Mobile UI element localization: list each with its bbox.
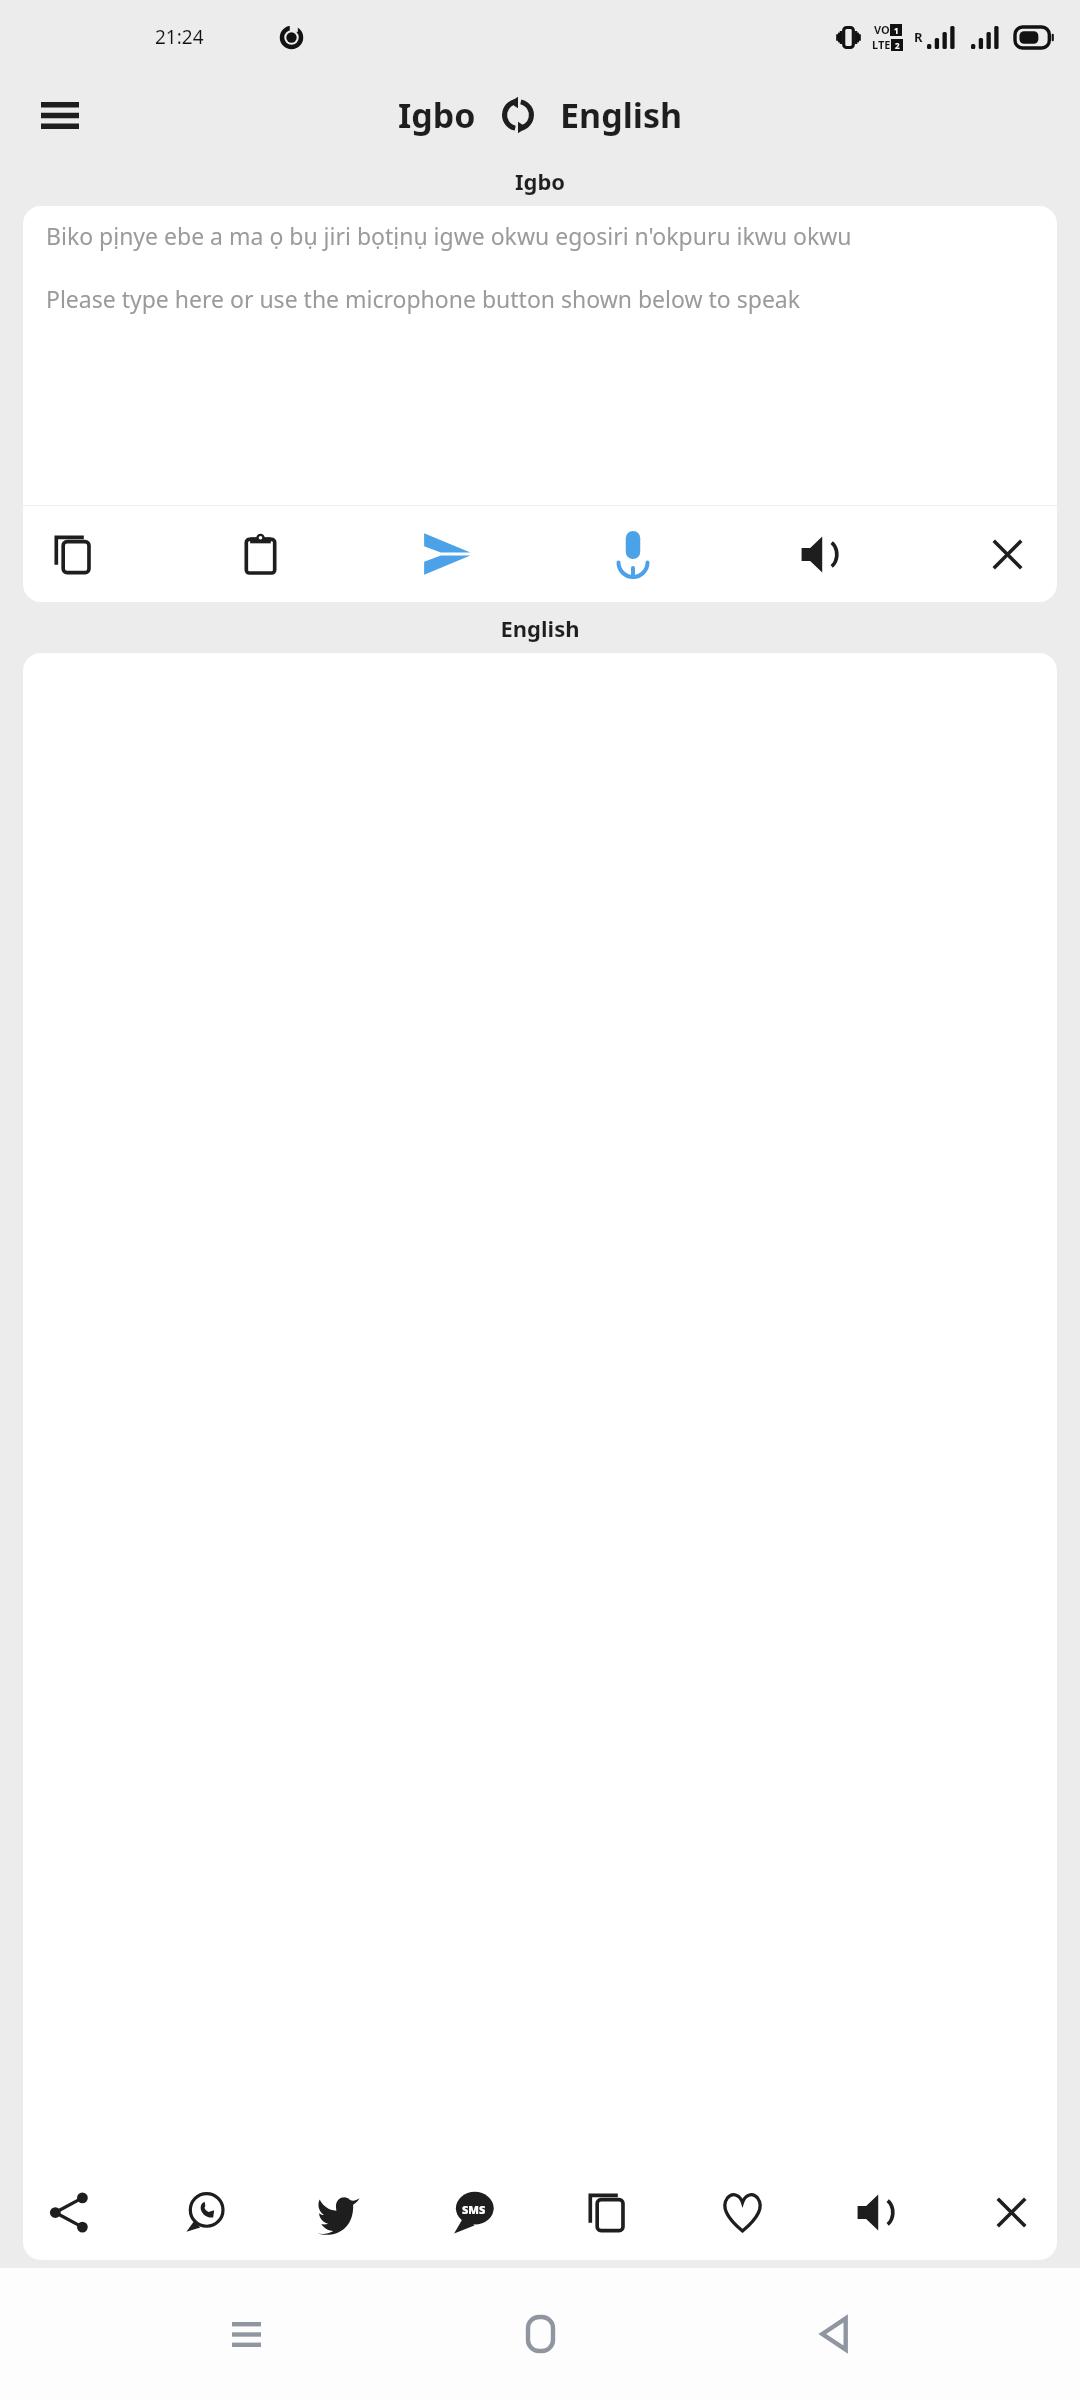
button[interactable]: Recents bbox=[198, 2286, 294, 2382]
staticText: Biko pịnye ebe a ma ọ bụ jiri bọtịnụ igw… bbox=[46, 220, 852, 251]
staticText: 2 bbox=[895, 40, 900, 51]
button[interactable]: Listen bbox=[838, 2174, 914, 2250]
button[interactable]: Share bbox=[31, 2174, 107, 2250]
staticText: 1 bbox=[894, 25, 899, 36]
staticText: Please type here or use the microphone b… bbox=[46, 283, 801, 314]
staticText: LTE bbox=[872, 37, 891, 52]
staticText: English bbox=[0, 613, 1080, 643]
button[interactable]: Clear bbox=[969, 516, 1045, 592]
staticText: English bbox=[560, 92, 683, 138]
button[interactable]: WhatsApp bbox=[166, 2174, 242, 2250]
button[interactable]: Igbo bbox=[398, 92, 476, 138]
button[interactable]: Clear bbox=[973, 2174, 1049, 2250]
button[interactable]: Translate bbox=[409, 516, 485, 592]
button[interactable]: Paste bbox=[222, 516, 298, 592]
staticText: VO bbox=[874, 22, 890, 37]
button[interactable]: Speak bbox=[595, 516, 671, 592]
staticText: SMS bbox=[462, 2202, 486, 2217]
button[interactable]: Copy bbox=[569, 2174, 645, 2250]
staticText: 21:24 bbox=[155, 24, 204, 50]
button[interactable]: Back bbox=[786, 2286, 882, 2382]
button[interactable]: English bbox=[560, 92, 683, 138]
button[interactable]: Twitter bbox=[300, 2174, 376, 2250]
button[interactable]: Menu bbox=[30, 85, 90, 145]
button[interactable]: Favourite bbox=[704, 2174, 780, 2250]
button[interactable]: Swap languages bbox=[494, 91, 542, 139]
button[interactable]: Copy bbox=[35, 516, 111, 592]
button[interactable]: SMS bbox=[435, 2174, 511, 2250]
button[interactable]: Listen bbox=[782, 516, 858, 592]
staticText: Igbo bbox=[0, 166, 1080, 196]
staticText: Igbo bbox=[398, 92, 476, 138]
staticText: R bbox=[914, 28, 923, 46]
button[interactable]: Home bbox=[492, 2286, 588, 2382]
